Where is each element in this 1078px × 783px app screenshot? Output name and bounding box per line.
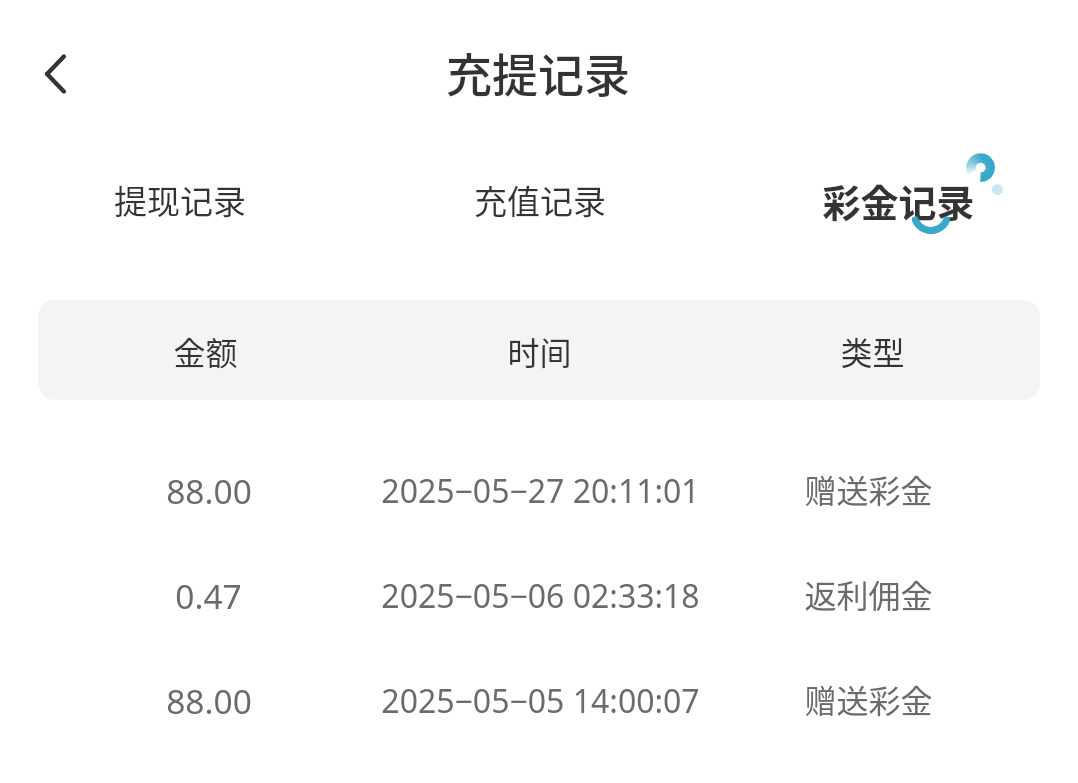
staticText: 类型 bbox=[840, 328, 905, 374]
staticText: 充提记录 bbox=[446, 39, 630, 106]
staticText: 88.00 bbox=[166, 678, 252, 724]
button[interactable]: Back bbox=[20, 39, 90, 109]
staticText: 返利佣金 bbox=[804, 571, 933, 617]
staticText: 金额 bbox=[173, 328, 238, 374]
staticText: 0.47 bbox=[175, 573, 242, 619]
staticText: 2025−05−06 02:33:18 bbox=[381, 574, 700, 618]
staticText: 2025−05−27 20:11:01 bbox=[381, 469, 700, 513]
staticText: 2025−05−05 14:00:07 bbox=[381, 679, 700, 723]
staticText: 时间 bbox=[507, 328, 572, 374]
staticText: 提现记录 bbox=[114, 176, 246, 224]
button[interactable]: 88.00 bbox=[38, 649, 1040, 753]
staticText: 充值记录 bbox=[474, 176, 606, 224]
button[interactable]: 充值记录 bbox=[360, 155, 719, 245]
staticText: 赠送彩金 bbox=[804, 466, 933, 512]
button[interactable]: 彩金记录 bbox=[719, 155, 1078, 245]
staticText: 赠送彩金 bbox=[804, 676, 933, 722]
button[interactable]: 提现记录 bbox=[0, 155, 360, 245]
button[interactable]: 88.00 bbox=[38, 439, 1040, 543]
staticText: 彩金记录 bbox=[822, 173, 975, 228]
staticText: 88.00 bbox=[166, 468, 252, 514]
button[interactable]: 0.47 bbox=[38, 544, 1040, 648]
